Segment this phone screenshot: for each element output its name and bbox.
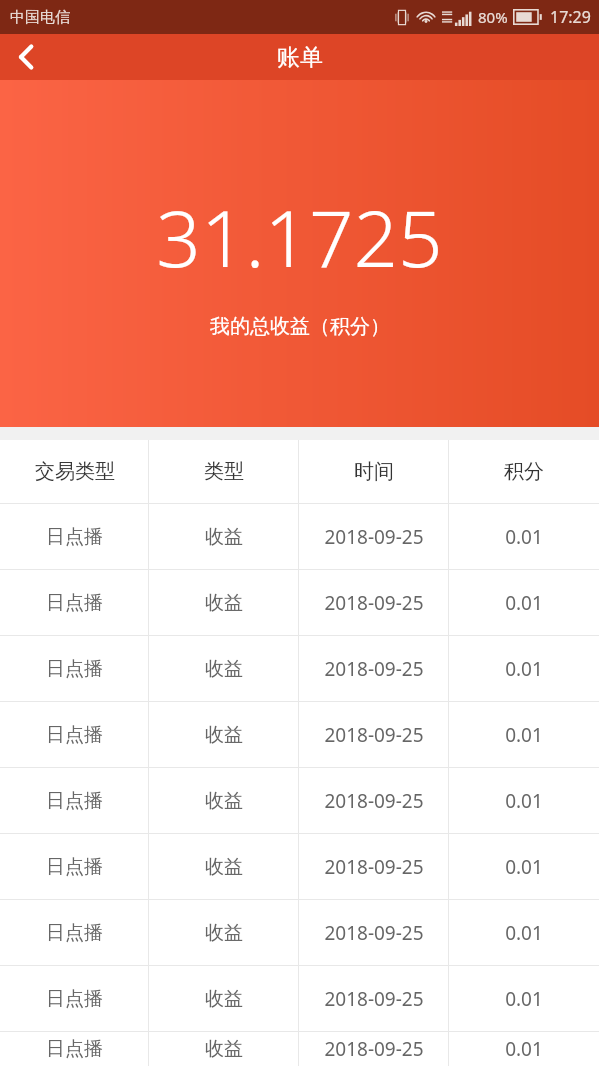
staticText: 日点播 (46, 1037, 103, 1061)
staticText: 31.1725 (156, 184, 443, 290)
button[interactable]: 交易类型 (0, 440, 599, 504)
staticText: 2018-09-25 (324, 1036, 424, 1062)
staticText: 0.01 (505, 854, 543, 880)
staticText: 日点播 (46, 921, 103, 945)
staticText: 收益 (205, 591, 243, 615)
staticText: 日点播 (46, 591, 103, 615)
staticText: 收益 (205, 921, 243, 945)
staticText: 0.01 (505, 1036, 543, 1062)
staticText: 0.01 (505, 656, 543, 682)
staticText: 收益 (205, 855, 243, 879)
staticText: 日点播 (46, 789, 103, 813)
staticText: 日点播 (46, 657, 103, 681)
button[interactable]: 日点播 (0, 900, 599, 966)
button[interactable]: 日点播 (0, 768, 599, 834)
staticText: 2018-09-25 (324, 854, 424, 880)
staticText: 时间 (354, 459, 394, 484)
staticText: 收益 (205, 1037, 243, 1061)
staticText: 0.01 (505, 986, 543, 1012)
staticText: 80% (478, 7, 508, 27)
staticText: 日点播 (46, 525, 103, 549)
staticText: 日点播 (46, 723, 103, 747)
staticText: 账单 (277, 43, 323, 72)
staticText: 我的总收益（积分） (210, 314, 390, 339)
button[interactable]: 日点播 (0, 966, 599, 1032)
staticText: 2018-09-25 (324, 656, 424, 682)
button[interactable]: 日点播 (0, 834, 599, 900)
staticText: 日点播 (46, 855, 103, 879)
button[interactable]: 日点播 (0, 702, 599, 768)
staticText: 2018-09-25 (324, 722, 424, 748)
staticText: 类型 (204, 459, 244, 484)
button[interactable]: Back (0, 34, 52, 80)
staticText: 2018-09-25 (324, 986, 424, 1012)
staticText: 0.01 (505, 524, 543, 550)
staticText: 2018-09-25 (324, 524, 424, 550)
staticText: 收益 (205, 789, 243, 813)
button[interactable]: 日点播 (0, 504, 599, 570)
button[interactable]: 日点播 (0, 570, 599, 636)
staticText: 2018-09-25 (324, 788, 424, 814)
staticText: 2018-09-25 (324, 920, 424, 946)
staticText: 交易类型 (35, 459, 115, 484)
staticText: 0.01 (505, 590, 543, 616)
staticText: 中国电信 (10, 8, 70, 27)
staticText: 2018-09-25 (324, 590, 424, 616)
staticText: 17:29 (550, 6, 591, 28)
staticText: 0.01 (505, 788, 543, 814)
button[interactable]: 日点播 (0, 636, 599, 702)
staticText: 0.01 (505, 920, 543, 946)
staticText: 收益 (205, 723, 243, 747)
staticText: 收益 (205, 657, 243, 681)
staticText: 收益 (205, 525, 243, 549)
staticText: 积分 (504, 459, 544, 484)
staticText: 收益 (205, 987, 243, 1011)
button[interactable]: 日点播 (0, 1032, 599, 1066)
staticText: 日点播 (46, 987, 103, 1011)
staticText: 0.01 (505, 722, 543, 748)
